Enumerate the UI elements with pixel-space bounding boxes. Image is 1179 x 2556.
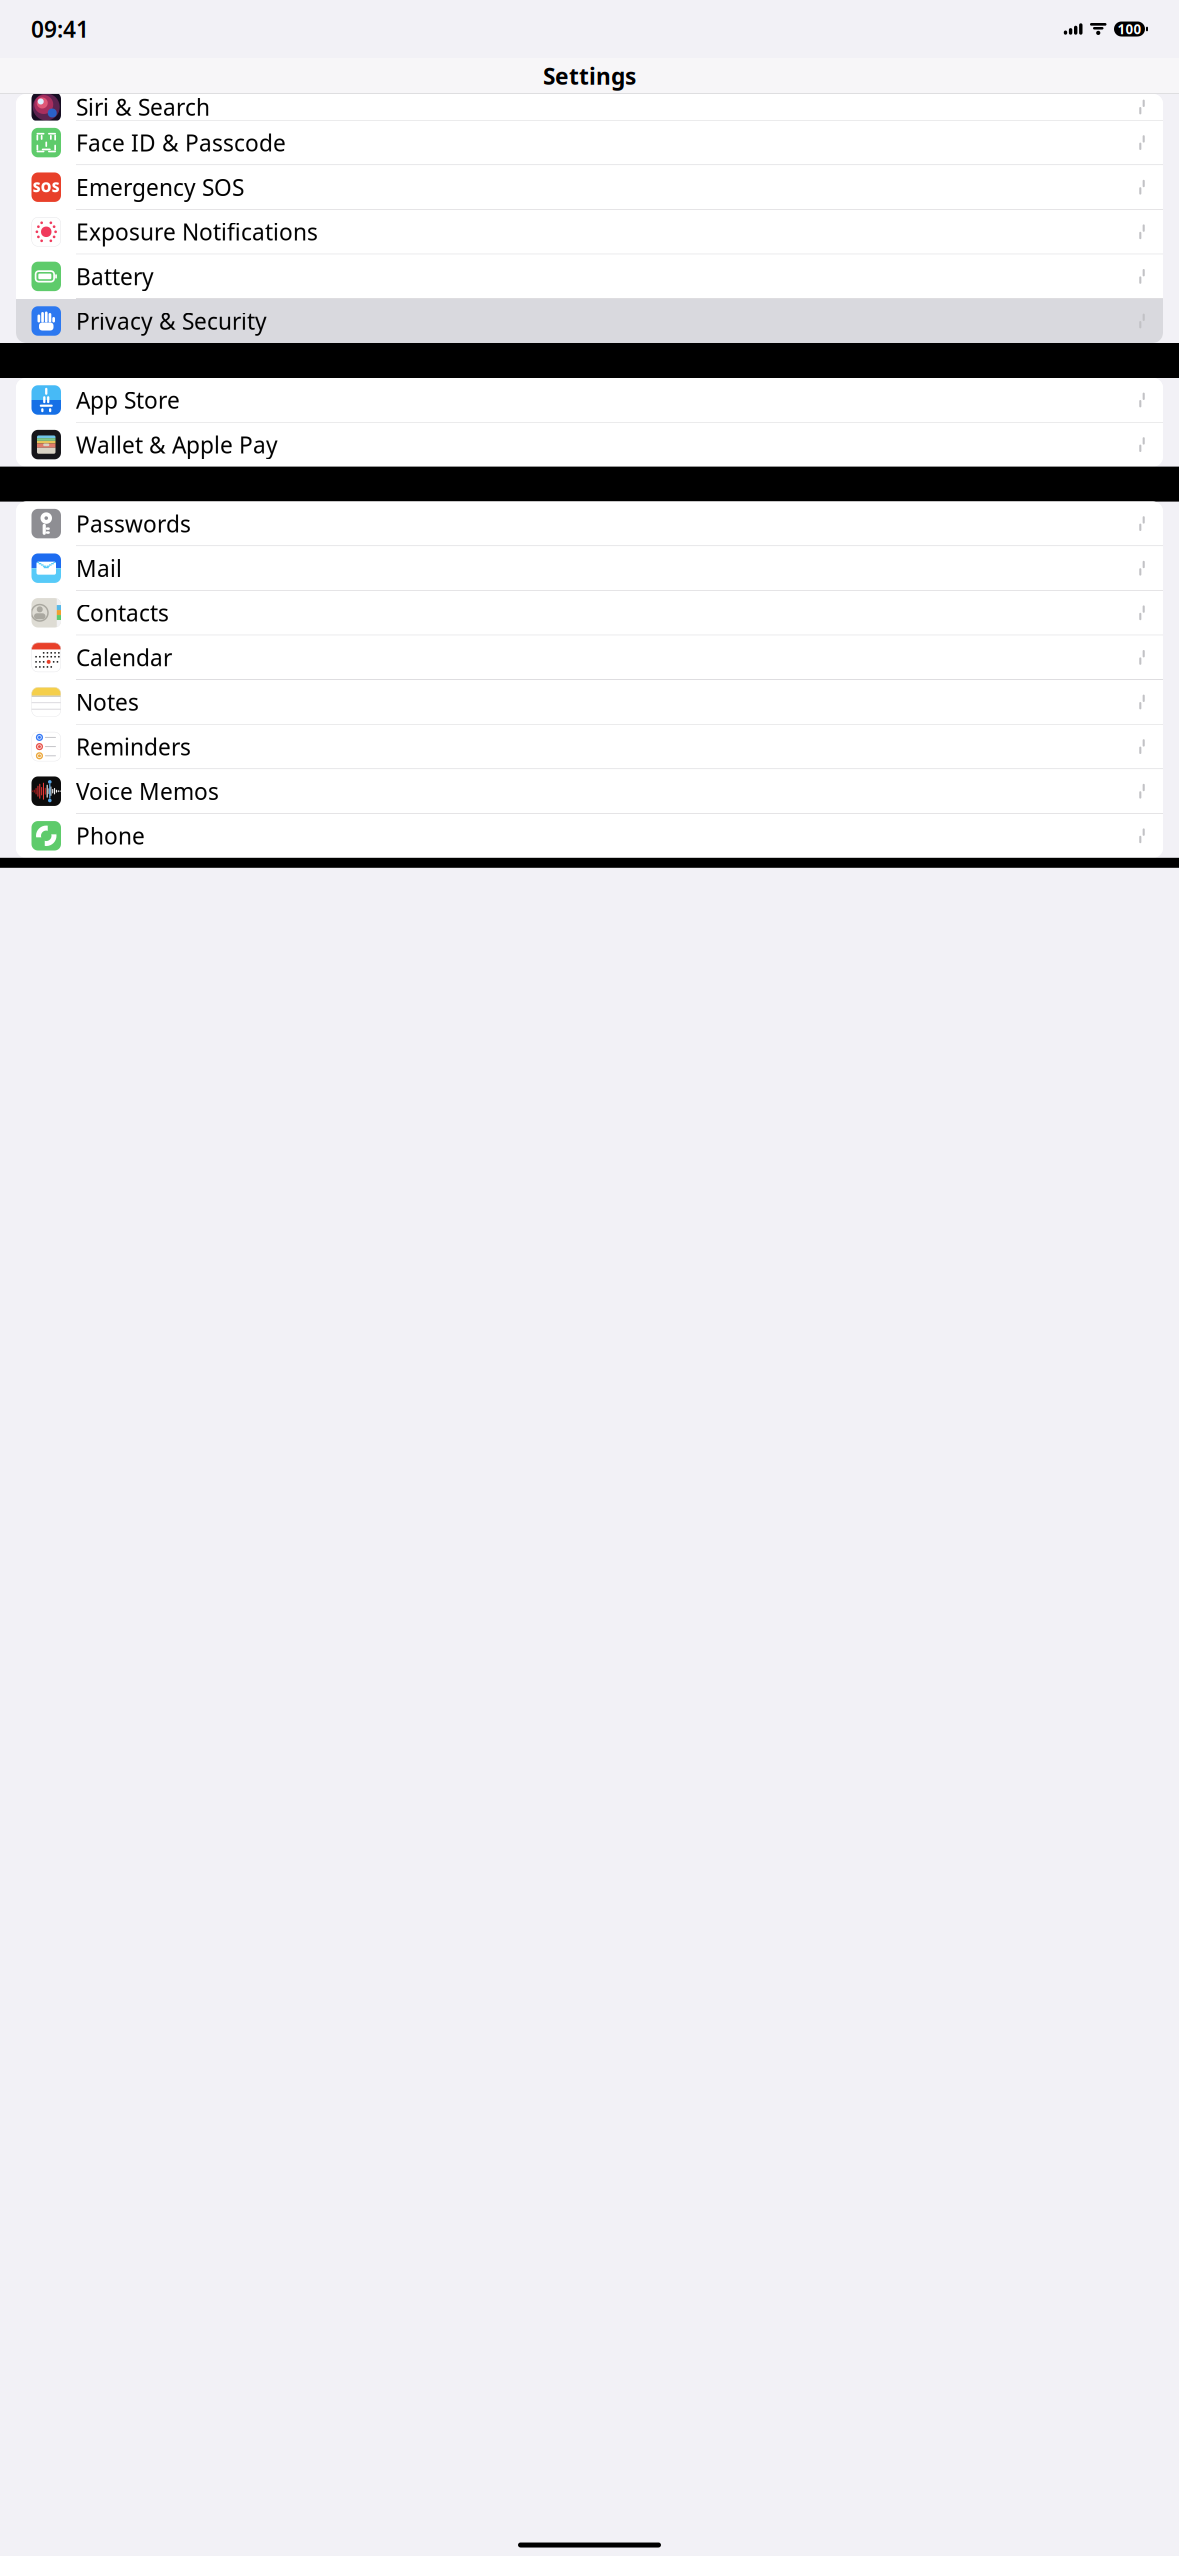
staticText: Mail <box>76 553 122 583</box>
staticText: Calendar <box>76 642 172 672</box>
staticText: 09:41 <box>31 14 89 44</box>
button[interactable]: Siri & Search <box>16 94 1163 121</box>
button[interactable]: Voice Memos <box>16 769 1163 814</box>
button[interactable]: SOS <box>16 165 1163 210</box>
button[interactable]: App Store <box>16 378 1163 423</box>
button[interactable]: Mail <box>16 546 1163 591</box>
button[interactable]: Reminders <box>16 725 1163 769</box>
staticText: Siri & Search <box>76 92 210 122</box>
button[interactable]: Face ID & Passcode <box>16 121 1163 165</box>
staticText: Passwords <box>76 508 191 539</box>
button[interactable]: Calendar <box>16 635 1163 680</box>
staticText: Battery <box>76 261 154 291</box>
button[interactable]: Battery <box>16 254 1163 299</box>
button[interactable]: Passwords <box>16 502 1163 546</box>
staticText: Notes <box>76 687 139 717</box>
staticText: Contacts <box>76 598 169 628</box>
button[interactable]: Contacts <box>16 591 1163 635</box>
button[interactable]: Notes <box>16 680 1163 725</box>
staticText: Settings <box>543 61 636 91</box>
staticText: App Store <box>76 385 180 415</box>
staticText: Wallet & Apple Pay <box>76 429 278 460</box>
staticText: Privacy & Security <box>76 306 267 336</box>
staticText: Face ID & Passcode <box>76 127 286 158</box>
button[interactable]: Phone <box>16 814 1163 858</box>
staticText: Voice Memos <box>76 776 219 806</box>
staticText: Phone <box>76 821 145 851</box>
staticText: SOS <box>33 178 60 196</box>
staticText: Reminders <box>76 731 191 762</box>
staticText: 100 <box>1117 20 1141 38</box>
button[interactable]: Privacy & Security <box>16 299 1163 343</box>
button[interactable]: Exposure Notifications <box>16 210 1163 254</box>
button[interactable]: Wallet & Apple Pay <box>16 423 1163 467</box>
staticText: Exposure Notifications <box>76 217 318 247</box>
staticText: Emergency SOS <box>76 172 244 202</box>
